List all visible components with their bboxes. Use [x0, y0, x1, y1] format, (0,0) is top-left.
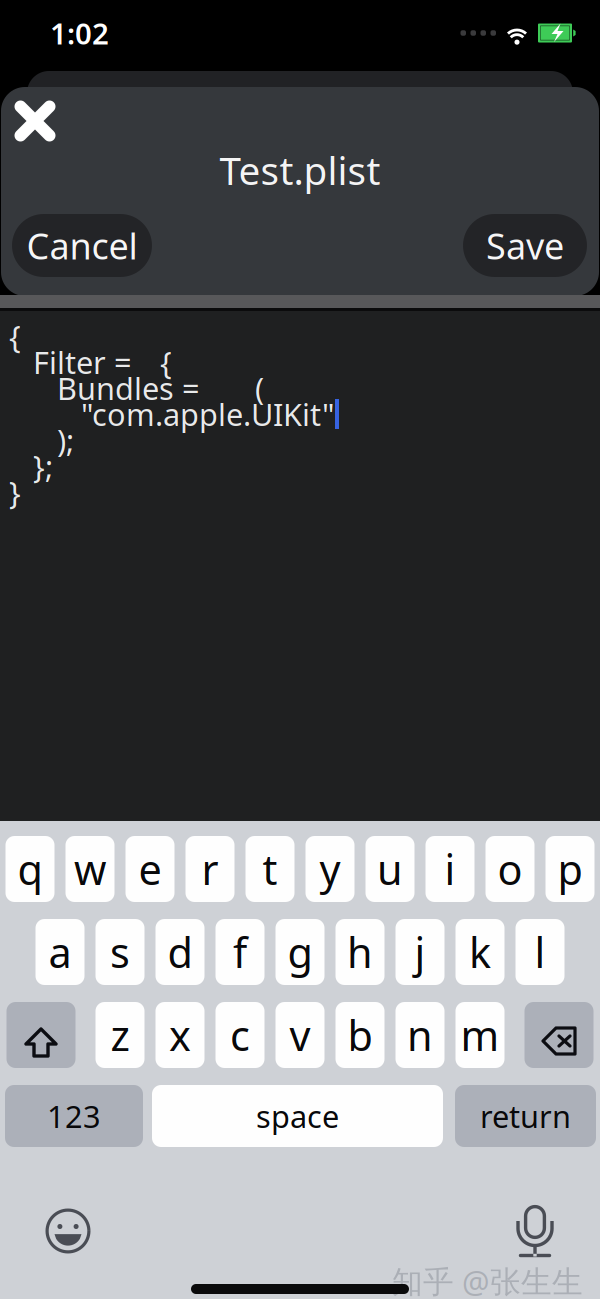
staticText: i [444, 842, 455, 896]
staticText: n [407, 1008, 433, 1062]
staticText: return [480, 1096, 571, 1136]
button[interactable]: z [95, 1002, 144, 1068]
staticText: c [230, 1008, 250, 1062]
button[interactable]: m [455, 1002, 504, 1068]
button[interactable]: Dictate [509, 1202, 561, 1260]
button[interactable]: i [425, 836, 474, 902]
staticText: a [48, 925, 71, 979]
staticText: j [414, 925, 425, 979]
button[interactable]: c [215, 1002, 264, 1068]
staticText: f [233, 925, 247, 979]
button[interactable]: space [152, 1085, 443, 1147]
button[interactable]: w [65, 836, 114, 902]
staticText: h [347, 925, 373, 979]
staticText: x [169, 1008, 191, 1062]
staticText: t [262, 842, 277, 896]
button[interactable]: Shift [6, 1002, 75, 1068]
button[interactable]: t [245, 836, 294, 902]
button[interactable]: v [275, 1002, 324, 1068]
button[interactable]: f [215, 919, 264, 985]
staticText: ( [255, 368, 264, 408]
staticText: 知乎 @张生生 [392, 1261, 583, 1299]
staticText: Save [486, 222, 564, 269]
button[interactable]: p [545, 836, 594, 902]
button[interactable]: y [305, 836, 354, 902]
staticText: Cancel [26, 222, 137, 269]
staticText: Bundles = [57, 368, 200, 408]
button[interactable]: Emoji [39, 1202, 97, 1260]
staticText: { [9, 316, 21, 356]
button[interactable]: n [395, 1002, 444, 1068]
button[interactable]: q [5, 836, 54, 902]
button[interactable]: 123 [5, 1085, 143, 1147]
staticText: k [469, 925, 491, 979]
button[interactable]: r [185, 836, 234, 902]
button[interactable]: h [335, 919, 384, 985]
button[interactable]: l [515, 919, 564, 985]
staticText: o [497, 842, 522, 896]
button[interactable]: d [155, 919, 204, 985]
staticText: space [256, 1096, 339, 1136]
staticText: s [110, 925, 130, 979]
staticText: } [9, 472, 21, 512]
staticText: ); [57, 420, 74, 460]
staticText: 123 [47, 1096, 101, 1136]
staticText: u [377, 842, 403, 896]
button[interactable]: u [365, 836, 414, 902]
button[interactable]: e [125, 836, 174, 902]
staticText: w [74, 842, 106, 896]
button[interactable]: Close [4, 90, 66, 152]
staticText: p [557, 842, 582, 896]
button[interactable]: b [335, 1002, 384, 1068]
staticText: v [289, 1008, 310, 1062]
staticText: r [201, 842, 218, 896]
staticText: d [167, 925, 192, 979]
button[interactable]: x [155, 1002, 204, 1068]
button[interactable]: s [95, 919, 144, 985]
staticText: m [460, 1008, 499, 1062]
button[interactable]: Save [463, 214, 587, 277]
staticText: e [138, 842, 161, 896]
button[interactable]: a [35, 919, 84, 985]
button[interactable]: k [455, 919, 504, 985]
staticText: y [319, 842, 340, 896]
staticText: "com.apple.UIKit" [81, 394, 335, 434]
button[interactable]: Cancel [12, 214, 152, 277]
button[interactable]: Delete [524, 1002, 593, 1068]
staticText: { [160, 342, 172, 382]
staticText: b [347, 1008, 372, 1062]
button[interactable]: j [395, 919, 444, 985]
staticText: Filter = [33, 342, 132, 382]
staticText: g [287, 925, 312, 979]
staticText: Test.plist [219, 144, 380, 196]
staticText: q [17, 842, 42, 896]
staticText: z [110, 1008, 129, 1062]
button[interactable]: g [275, 919, 324, 985]
button[interactable]: return [455, 1085, 596, 1147]
button[interactable]: o [485, 836, 534, 902]
staticText: l [534, 925, 545, 979]
staticText: 1:02 [50, 13, 109, 52]
staticText: }; [33, 446, 53, 486]
